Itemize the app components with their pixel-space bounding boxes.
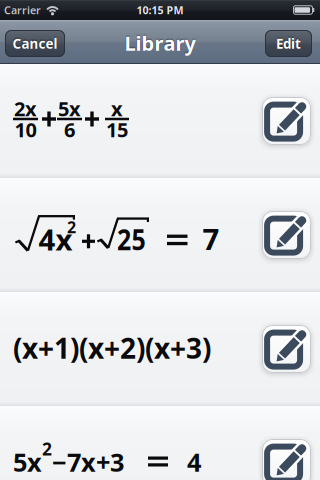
staticText: Library [124,30,195,56]
button[interactable]: (x+1)(x+2)(x+3) [0,292,320,406]
button[interactable] [262,97,311,145]
staticText: 2 [67,216,76,238]
button[interactable]: 2x [0,64,320,178]
staticText: 5x [58,95,81,122]
staticText: 2x [14,95,37,122]
staticText: 10 [14,116,36,143]
staticText: (x+1)(x+2)(x+3) [13,329,211,367]
button[interactable]: 4x [0,178,320,292]
button[interactable]: Cancel [5,28,65,55]
staticText: 6 [64,116,75,143]
button[interactable]: Edit [265,28,312,55]
staticText: 4x [38,219,72,258]
staticText: 7 [202,219,219,258]
staticText: Edit [276,35,301,52]
staticText: 4 [187,445,201,479]
staticText: −7x+3 [52,445,124,479]
staticText: Carrier [4,3,41,17]
staticText: 15 [106,116,128,143]
button[interactable] [262,439,311,480]
staticText: 10:15 PM [136,3,183,17]
button[interactable]: 5x [0,406,320,480]
button[interactable] [262,211,311,259]
staticText: 25 [117,219,151,258]
staticText: x [111,95,123,122]
button[interactable] [262,325,311,373]
staticText: 5x [13,445,42,479]
staticText: 2 [42,437,52,460]
staticText: Cancel [12,35,57,52]
